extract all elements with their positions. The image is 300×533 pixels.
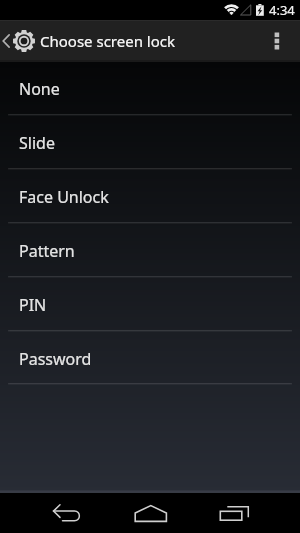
staticText: Choose screen lock <box>40 31 175 51</box>
button[interactable]: Slide <box>0 116 300 170</box>
button[interactable]: Face Unlock <box>0 170 300 224</box>
staticText: Face Unlock <box>19 186 109 208</box>
button[interactable]: Pattern <box>0 224 300 278</box>
button[interactable]: Navigate up <box>0 20 40 62</box>
staticText: Slide <box>19 132 55 154</box>
staticText: None <box>19 78 60 100</box>
button[interactable]: Back <box>24 493 108 533</box>
button[interactable]: None <box>0 62 300 116</box>
button[interactable]: PIN <box>0 278 300 332</box>
staticText: 4:34 <box>269 1 295 19</box>
button[interactable]: Password <box>0 332 300 386</box>
button[interactable]: Recent apps <box>192 493 276 533</box>
button[interactable]: Home <box>108 493 192 533</box>
staticText: Pattern <box>19 240 75 262</box>
staticText: PIN <box>19 294 47 316</box>
staticText: Password <box>19 348 92 370</box>
button[interactable]: More options <box>268 20 300 62</box>
